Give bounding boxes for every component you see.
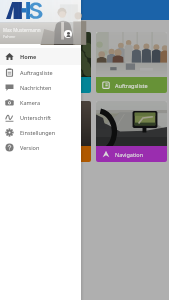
staticText: Max Mustermann: [3, 27, 41, 33]
button[interactable]: Profil: [64, 30, 72, 38]
staticText: Unterschrift: [20, 114, 52, 121]
staticText: Navigation: [115, 151, 144, 158]
button[interactable]: Nachrichten: [0, 80, 81, 95]
button[interactable]: Auftragsliste: [96, 32, 167, 93]
button[interactable]: Auftragsliste: [0, 65, 81, 80]
staticText: Nachrichten: [20, 84, 52, 91]
button[interactable]: Home: [0, 48, 81, 65]
staticText: Version: [20, 144, 40, 151]
button[interactable]: Navigation: [96, 101, 167, 162]
button[interactable]: Einstellungen: [0, 125, 81, 140]
button[interactable]: Unterschrift: [20, 101, 91, 162]
staticText: Fahrer: [3, 34, 16, 39]
staticText: Karte: [39, 82, 53, 89]
staticText: Einstellungen: [20, 129, 56, 136]
button[interactable]: Kamera: [0, 95, 81, 110]
button[interactable]: Unterschrift: [0, 110, 81, 125]
staticText: Auftragsliste: [115, 82, 148, 89]
button[interactable]: Karte: [20, 32, 91, 93]
staticText: Auftragsliste: [20, 69, 53, 76]
staticText: Kamera: [20, 99, 40, 106]
button[interactable]: Version: [0, 140, 81, 155]
staticText: Home: [20, 53, 37, 60]
